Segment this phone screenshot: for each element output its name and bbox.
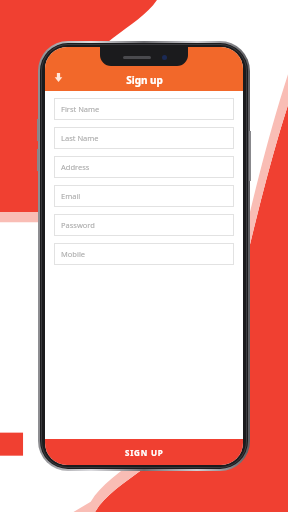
button[interactable]: First Name xyxy=(54,98,234,120)
button[interactable]: Address xyxy=(54,156,234,178)
staticText: First Name xyxy=(61,104,100,114)
staticText: Sign up xyxy=(126,73,163,87)
staticText: Last Name xyxy=(61,133,99,143)
staticText: Address xyxy=(61,162,90,172)
button[interactable]: Last Name xyxy=(54,127,234,149)
button[interactable]: Password xyxy=(54,214,234,236)
staticText: Mobile xyxy=(61,249,86,259)
button[interactable]: Email xyxy=(54,185,234,207)
button[interactable]: SIGN UP xyxy=(45,439,243,465)
staticText: SIGN UP xyxy=(125,447,164,458)
staticText: Password xyxy=(61,220,95,230)
staticText: Email xyxy=(61,191,81,201)
button[interactable]: Mobile xyxy=(54,243,234,265)
button[interactable]: Back xyxy=(49,68,67,86)
